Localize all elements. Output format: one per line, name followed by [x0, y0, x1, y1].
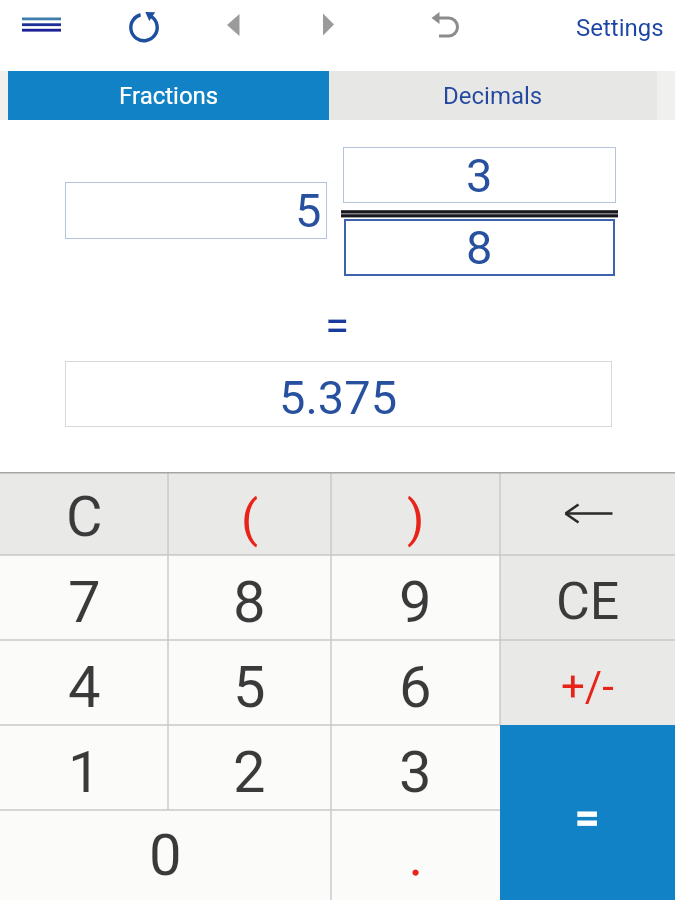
button[interactable]: ) — [331, 472, 500, 555]
button[interactable]: 1 — [0, 725, 168, 810]
staticText: 3 — [466, 148, 493, 203]
button[interactable]: 8 — [168, 555, 331, 640]
button[interactable]: 8 — [344, 219, 615, 276]
staticText: 5 — [295, 183, 322, 238]
button[interactable]: 4 — [0, 640, 168, 725]
staticText: 5.375 — [279, 370, 398, 425]
button[interactable]: 9 — [331, 555, 500, 640]
staticText: 0 — [149, 821, 182, 889]
staticText: 3 — [399, 738, 432, 806]
staticText: 4 — [68, 653, 101, 721]
button[interactable]: 3 — [343, 147, 616, 203]
button[interactable] — [215, 5, 255, 49]
button[interactable]: 7 — [0, 555, 168, 640]
button[interactable] — [500, 472, 675, 555]
button[interactable]: 5.375 — [65, 361, 612, 427]
staticText: = — [575, 793, 600, 845]
button[interactable]: +/- — [500, 640, 675, 725]
staticText: +/- — [561, 662, 614, 711]
staticText: 8 — [466, 220, 493, 275]
button[interactable]: 3 — [331, 725, 500, 810]
button[interactable] — [420, 2, 468, 50]
button[interactable]: CE — [500, 555, 675, 640]
button[interactable]: 5 — [168, 640, 331, 725]
staticText: ( — [241, 490, 259, 549]
staticText: CE — [556, 571, 620, 632]
button[interactable]: 2 — [168, 725, 331, 810]
button[interactable] — [124, 5, 166, 49]
staticText: Fractions — [119, 82, 219, 110]
button[interactable]: C — [0, 472, 168, 555]
button[interactable]: 6 — [331, 640, 500, 725]
staticText: = — [325, 300, 350, 345]
staticText: ) — [407, 490, 425, 549]
staticText: 7 — [68, 568, 101, 636]
button[interactable]: Decimals — [329, 71, 657, 120]
button[interactable]: = — [500, 725, 675, 900]
button[interactable]: 0 — [0, 810, 331, 900]
staticText: Settings — [576, 14, 664, 42]
button[interactable]: . — [331, 810, 500, 900]
staticText: . — [410, 834, 422, 886]
staticText: 8 — [233, 568, 266, 636]
button[interactable]: ( — [168, 472, 331, 555]
staticText: Decimals — [443, 82, 543, 110]
button[interactable]: Fractions — [8, 71, 329, 120]
staticText: 9 — [399, 568, 432, 636]
button[interactable] — [14, 8, 70, 48]
staticText: 6 — [399, 653, 432, 721]
staticText: 5 — [233, 653, 266, 721]
staticText: 1 — [68, 738, 101, 806]
staticText: 2 — [233, 738, 266, 806]
button[interactable]: Settings — [548, 8, 664, 48]
button[interactable] — [310, 5, 350, 49]
button[interactable]: 5 — [65, 182, 327, 239]
staticText: C — [66, 484, 103, 550]
